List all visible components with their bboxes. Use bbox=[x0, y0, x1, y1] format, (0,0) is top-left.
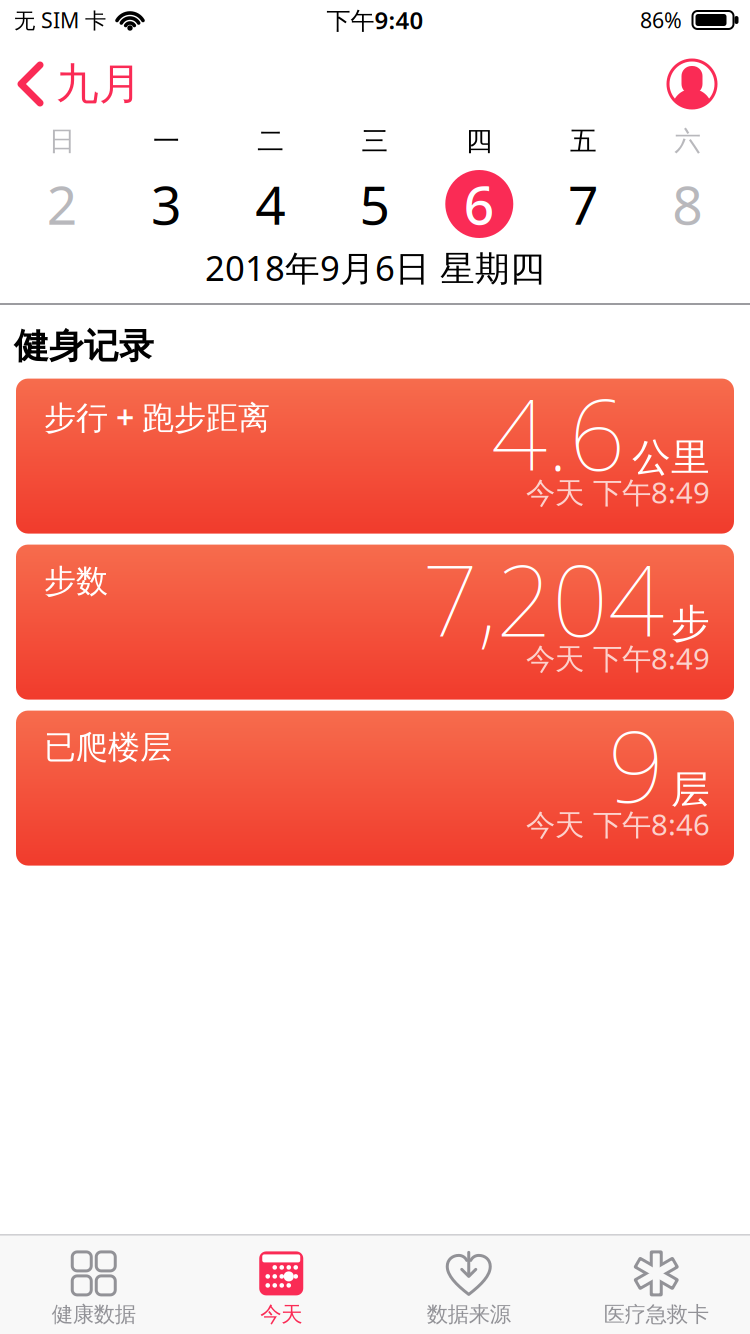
staticText: 2018年9月6日 星期四 bbox=[205, 244, 545, 290]
button[interactable]: 2 bbox=[10, 169, 114, 239]
staticText: 今天 下午8:49 bbox=[526, 473, 710, 512]
staticText: 4 bbox=[255, 169, 286, 239]
staticText: 86% bbox=[640, 6, 682, 34]
button[interactable]: 5 bbox=[323, 169, 427, 239]
button[interactable]: 步行 + 跑步距离 bbox=[16, 379, 734, 534]
staticText: 层 bbox=[671, 766, 710, 813]
button[interactable]: 九月 bbox=[16, 58, 142, 110]
staticText: 4.6 bbox=[491, 367, 625, 498]
button[interactable]: 8 bbox=[636, 169, 740, 239]
staticText: 步行 + 跑步距离 bbox=[44, 396, 270, 438]
staticText: 健康数据 bbox=[52, 1301, 136, 1328]
staticText: 五 bbox=[570, 125, 597, 157]
staticText: 今天 下午8:46 bbox=[526, 805, 710, 844]
staticText: 步数 bbox=[44, 562, 108, 601]
staticText: 8 bbox=[672, 169, 703, 239]
button[interactable]: 步数 bbox=[16, 545, 734, 700]
staticText: 6 bbox=[464, 169, 495, 239]
staticText: 数据来源 bbox=[427, 1301, 511, 1328]
staticText: 一 bbox=[153, 125, 180, 157]
button[interactable]: 3 bbox=[114, 169, 219, 239]
staticText: 今天 bbox=[260, 1301, 302, 1328]
button[interactable]: 健康数据 bbox=[0, 1251, 187, 1328]
staticText: 日 bbox=[49, 125, 76, 157]
staticText: 3 bbox=[151, 169, 182, 239]
staticText: 医疗急救卡 bbox=[604, 1301, 709, 1328]
staticText: 7 bbox=[568, 169, 599, 239]
staticText: 2 bbox=[47, 169, 78, 239]
staticText: 二 bbox=[257, 125, 284, 157]
staticText: 无 SIM 卡 bbox=[14, 6, 106, 34]
button[interactable]: 今天 bbox=[187, 1251, 375, 1328]
staticText: 三 bbox=[361, 125, 388, 157]
button[interactable]: 数据来源 bbox=[375, 1251, 562, 1328]
staticText: 健身记录 bbox=[14, 325, 154, 368]
staticText: 六 bbox=[674, 125, 701, 157]
staticText: 5 bbox=[359, 169, 390, 239]
staticText: 9 bbox=[608, 699, 664, 830]
button[interactable]: 6 bbox=[427, 169, 531, 239]
staticText: 步 bbox=[671, 600, 710, 647]
staticText: 下午9:40 bbox=[326, 4, 423, 36]
button[interactable]: 4 bbox=[219, 169, 323, 239]
button[interactable]: 7 bbox=[531, 169, 636, 239]
staticText: 已爬楼层 bbox=[44, 728, 172, 767]
staticText: 公里 bbox=[632, 434, 710, 481]
button[interactable]: 医疗急救卡 bbox=[562, 1251, 750, 1328]
button[interactable]: 已爬楼层 bbox=[16, 711, 734, 866]
staticText: 四 bbox=[466, 125, 493, 157]
staticText: 九月 bbox=[56, 58, 142, 110]
staticText: 7,204 bbox=[422, 533, 664, 664]
button[interactable]: Profile bbox=[668, 60, 716, 108]
staticText: 今天 下午8:49 bbox=[526, 639, 710, 678]
